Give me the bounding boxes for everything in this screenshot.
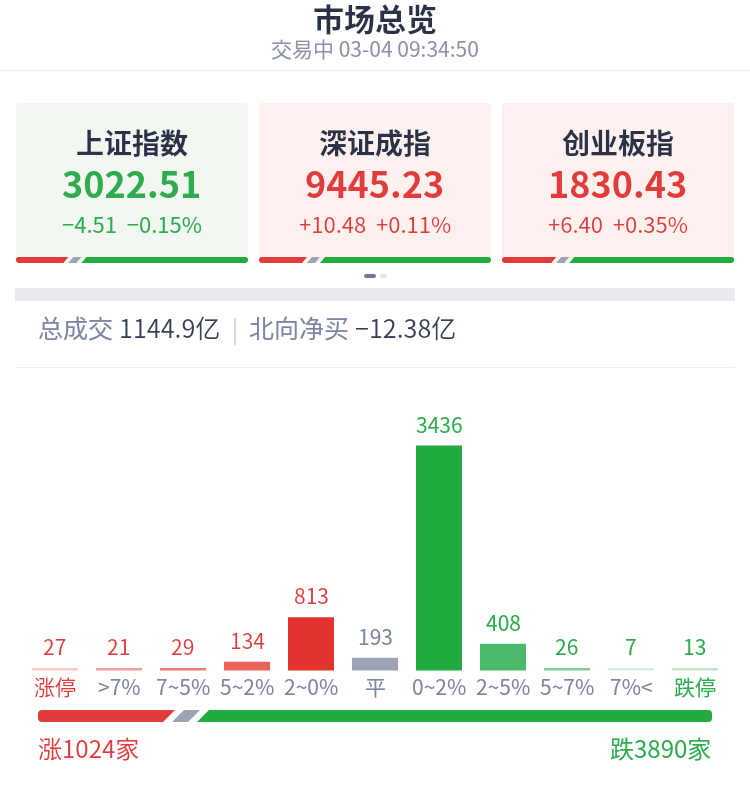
staticText: 193 (358, 621, 393, 647)
staticText: +10.48 +0.11% (299, 207, 452, 231)
staticText: 5~7% (540, 671, 595, 697)
button[interactable]: 深证成指 (259, 103, 491, 263)
staticText: 3436 (416, 409, 463, 435)
staticText: | (221, 310, 249, 345)
staticText: 涨1024家 (38, 730, 140, 758)
staticText: 27 (43, 631, 67, 657)
staticText: 26 (555, 631, 579, 657)
staticText: 跌3890家 (610, 730, 712, 758)
staticText: 3022.51 (62, 156, 202, 194)
staticText: 创业板指 (562, 122, 675, 152)
staticText: 7~5% (156, 671, 211, 697)
staticText: 9445.23 (305, 156, 445, 194)
staticText: 1830.43 (548, 156, 688, 194)
staticText: 涨停 (34, 671, 76, 697)
staticText: >7% (98, 671, 141, 697)
staticText: 408 (486, 607, 521, 633)
staticText: 5~2% (220, 671, 275, 697)
staticText: 2~5% (476, 671, 531, 697)
button[interactable]: 上证指数 (16, 103, 248, 263)
staticText: 交易中 03-04 09:34:50 (271, 33, 479, 57)
staticText: 29 (171, 631, 195, 657)
staticText: 北向净买 (249, 309, 355, 345)
staticText: 1144.9亿 (119, 309, 221, 345)
staticText: 134 (230, 625, 265, 651)
staticText: 平 (365, 671, 386, 697)
staticText: 总成交 (38, 309, 119, 345)
staticText: −12.38亿 (355, 309, 457, 345)
staticText: 21 (107, 631, 131, 657)
staticText: 0~2% (412, 671, 467, 697)
staticText: 2~0% (284, 671, 339, 697)
staticText: 跌停 (674, 671, 716, 697)
staticText: 上证指数 (76, 122, 189, 152)
staticText: 13 (683, 631, 707, 657)
staticText: 813 (294, 580, 329, 606)
staticText: −4.51 −0.15% (62, 207, 203, 231)
button[interactable]: 创业板指 (502, 103, 734, 263)
staticText: +6.40 +0.35% (548, 207, 689, 231)
staticText: 7 (625, 631, 637, 657)
staticText: 深证成指 (319, 122, 432, 152)
staticText: 市场总览 (313, 0, 437, 31)
staticText: 7%< (610, 671, 653, 697)
